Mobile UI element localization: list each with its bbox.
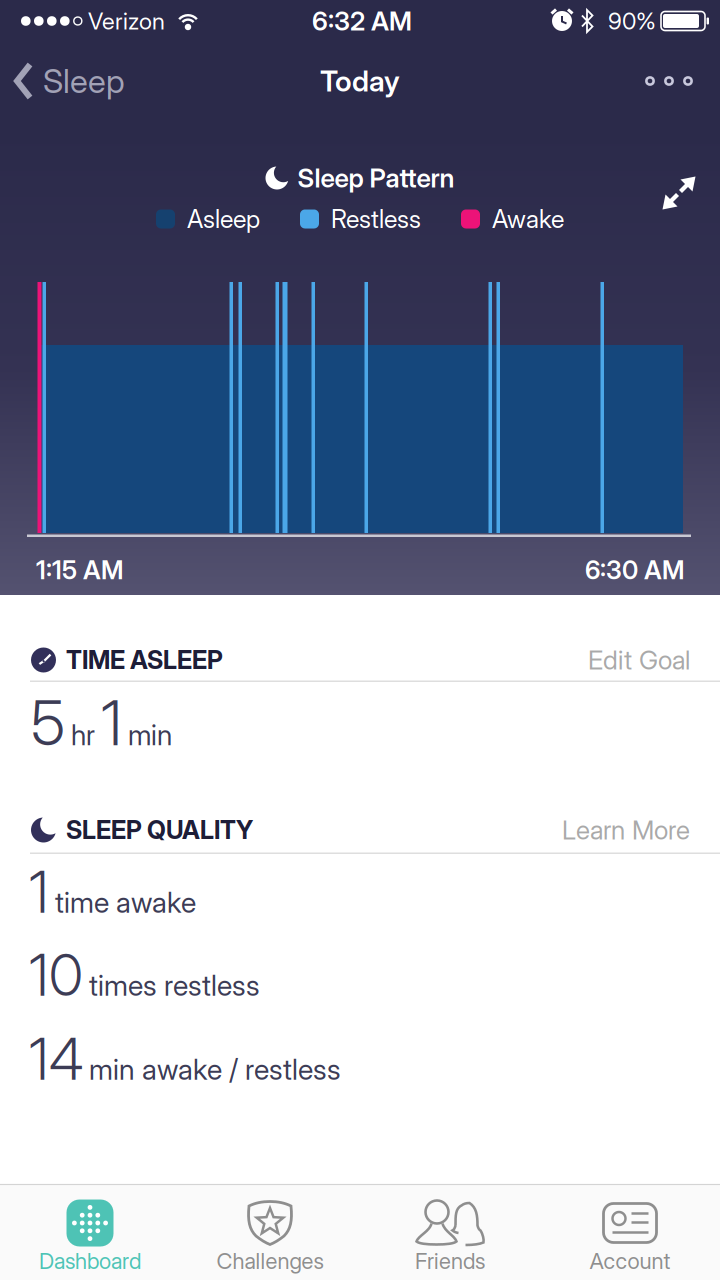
button[interactable]: Account	[540, 1185, 720, 1280]
staticText: Learn More	[562, 814, 690, 846]
staticText: 10	[29, 940, 83, 1009]
staticText: Sleep Pattern	[297, 162, 454, 194]
staticText: Account	[589, 1248, 670, 1274]
staticText: 1	[29, 857, 49, 926]
staticText: times restless	[89, 968, 260, 1003]
staticText: Restless	[331, 204, 421, 234]
staticText: time awake	[55, 885, 196, 920]
button[interactable]	[662, 176, 695, 209]
staticText: 1	[101, 686, 122, 760]
button[interactable]: Sleep	[14, 61, 125, 101]
staticText: Friends	[415, 1248, 485, 1274]
staticText: Awake	[492, 204, 564, 234]
staticText: Dashboard	[39, 1248, 141, 1274]
staticText: 5	[31, 686, 65, 760]
button[interactable]: Friends	[360, 1185, 540, 1280]
button[interactable]: Edit Goal	[588, 644, 690, 676]
staticText: min	[128, 718, 172, 752]
staticText: Verizon	[88, 7, 165, 35]
staticText: Edit Goal	[588, 644, 690, 676]
staticText: min awake / restless	[89, 1052, 341, 1087]
staticText: Sleep	[43, 61, 125, 101]
staticText: SLEEP QUALITY	[66, 815, 253, 845]
staticText: hr	[71, 718, 95, 752]
button[interactable]	[645, 76, 693, 86]
staticText: Challenges	[216, 1248, 323, 1274]
staticText: 90%	[608, 7, 656, 35]
button[interactable]: Challenges	[180, 1185, 360, 1280]
staticText: 14	[29, 1024, 83, 1093]
staticText: Asleep	[187, 204, 260, 234]
staticText: TIME ASLEEP	[66, 645, 223, 675]
staticText: Today	[320, 63, 400, 99]
staticText: 6:30 AM	[585, 555, 684, 585]
button[interactable]: Learn More	[562, 814, 690, 846]
staticText: 6:32 AM	[312, 5, 412, 37]
staticText: 1:15 AM	[36, 555, 123, 585]
button[interactable]: Dashboard	[0, 1185, 180, 1280]
